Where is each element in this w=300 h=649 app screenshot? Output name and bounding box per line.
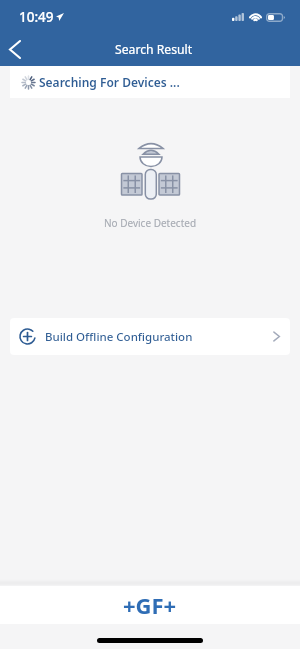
- staticText: Build Offline Configuration: [45, 329, 193, 345]
- staticText: +GF+: [123, 590, 177, 620]
- staticText: Searching For Devices ...: [39, 74, 180, 90]
- staticText: Search Result: [115, 41, 193, 58]
- button[interactable]: Searching For Devices ...: [10, 66, 290, 98]
- button[interactable]: Build Offline Configuration: [10, 318, 290, 355]
- staticText: 10:49: [19, 8, 54, 26]
- staticText: No Device Detected: [0, 216, 300, 230]
- button[interactable]: Back: [0, 32, 30, 65]
